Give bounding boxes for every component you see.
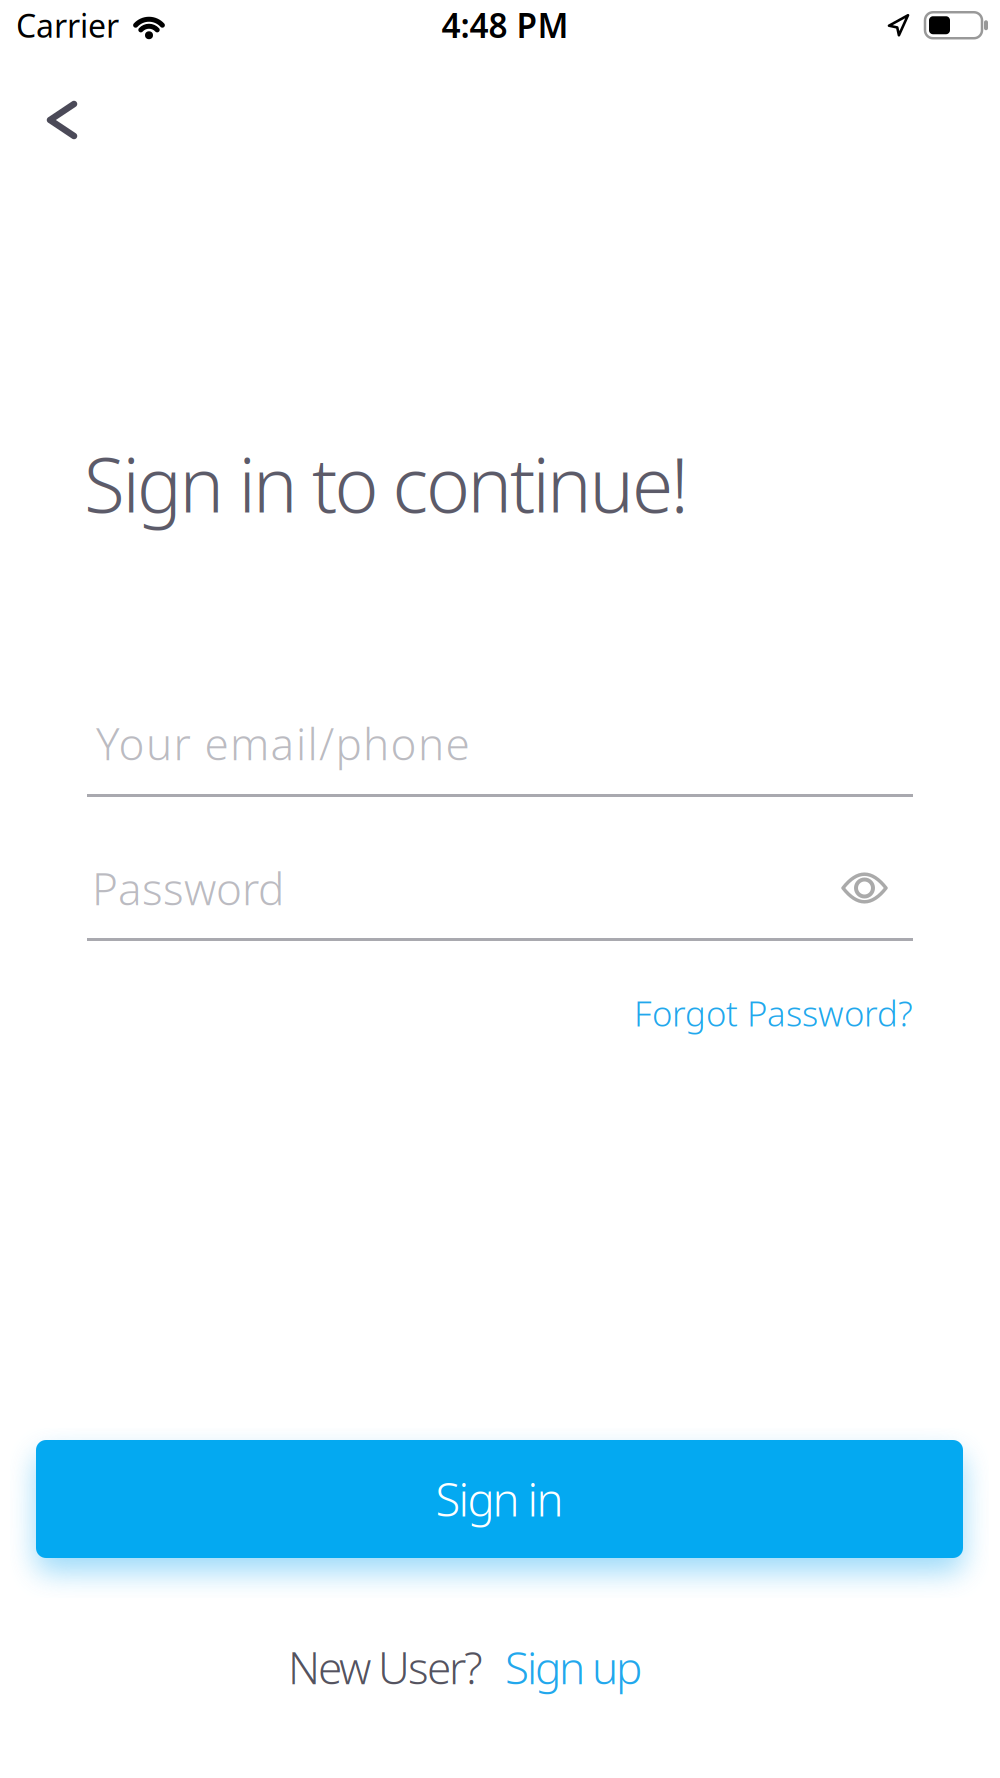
staticText: Forgot Password? xyxy=(634,990,913,1036)
staticText: Sign up xyxy=(505,1638,642,1696)
staticText: Sign in xyxy=(435,1469,563,1529)
button[interactable]: Back xyxy=(30,84,94,156)
staticText: Your email/phone xyxy=(96,714,469,772)
staticText: New User? xyxy=(288,1638,483,1696)
staticText: Sign in to continue! xyxy=(84,434,688,533)
staticText: Password xyxy=(92,859,284,917)
staticText: Carrier xyxy=(16,4,119,46)
staticText: 4:48 PM xyxy=(441,3,568,47)
button[interactable]: Sign up xyxy=(483,1638,642,1696)
button[interactable]: Forgot Password? xyxy=(634,990,913,1036)
button[interactable]: Sign in xyxy=(36,1440,963,1558)
button[interactable]: Show password xyxy=(833,863,896,913)
